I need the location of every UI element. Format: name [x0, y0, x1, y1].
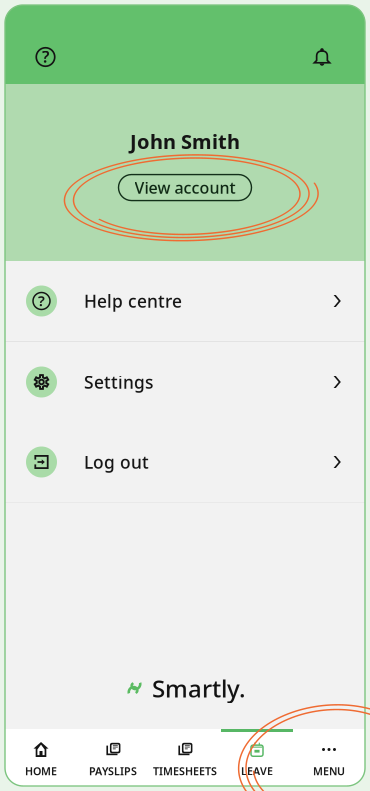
button[interactable]: MENU — [293, 729, 365, 786]
button[interactable]: Notifications — [300, 35, 344, 79]
button[interactable]: LEAVE — [221, 729, 293, 786]
button[interactable]: Log out — [5, 422, 365, 502]
staticText: John Smith — [130, 128, 240, 155]
staticText: MENU — [313, 764, 345, 778]
staticText: TIMESHEETS — [153, 764, 217, 778]
button[interactable]: Settings — [5, 342, 365, 422]
staticText: HOME — [25, 764, 57, 778]
staticText: ? — [42, 46, 49, 67]
button[interactable]: PAYSLIPS — [77, 729, 149, 786]
button[interactable]: View account — [118, 175, 251, 201]
staticText: PAYSLIPS — [89, 764, 137, 778]
staticText: ? — [38, 291, 45, 310]
staticText: Log out — [84, 450, 149, 473]
button[interactable]: HOME — [5, 729, 77, 786]
button[interactable]: ? — [5, 261, 365, 341]
staticText: Settings — [84, 370, 153, 393]
staticText: View account — [134, 177, 235, 198]
staticText: Smartly. — [152, 672, 246, 704]
staticText: Help centre — [84, 289, 182, 312]
button[interactable]: Help centre — [23, 35, 67, 79]
button[interactable]: TIMESHEETS — [149, 729, 221, 786]
staticText: LEAVE — [241, 764, 273, 778]
